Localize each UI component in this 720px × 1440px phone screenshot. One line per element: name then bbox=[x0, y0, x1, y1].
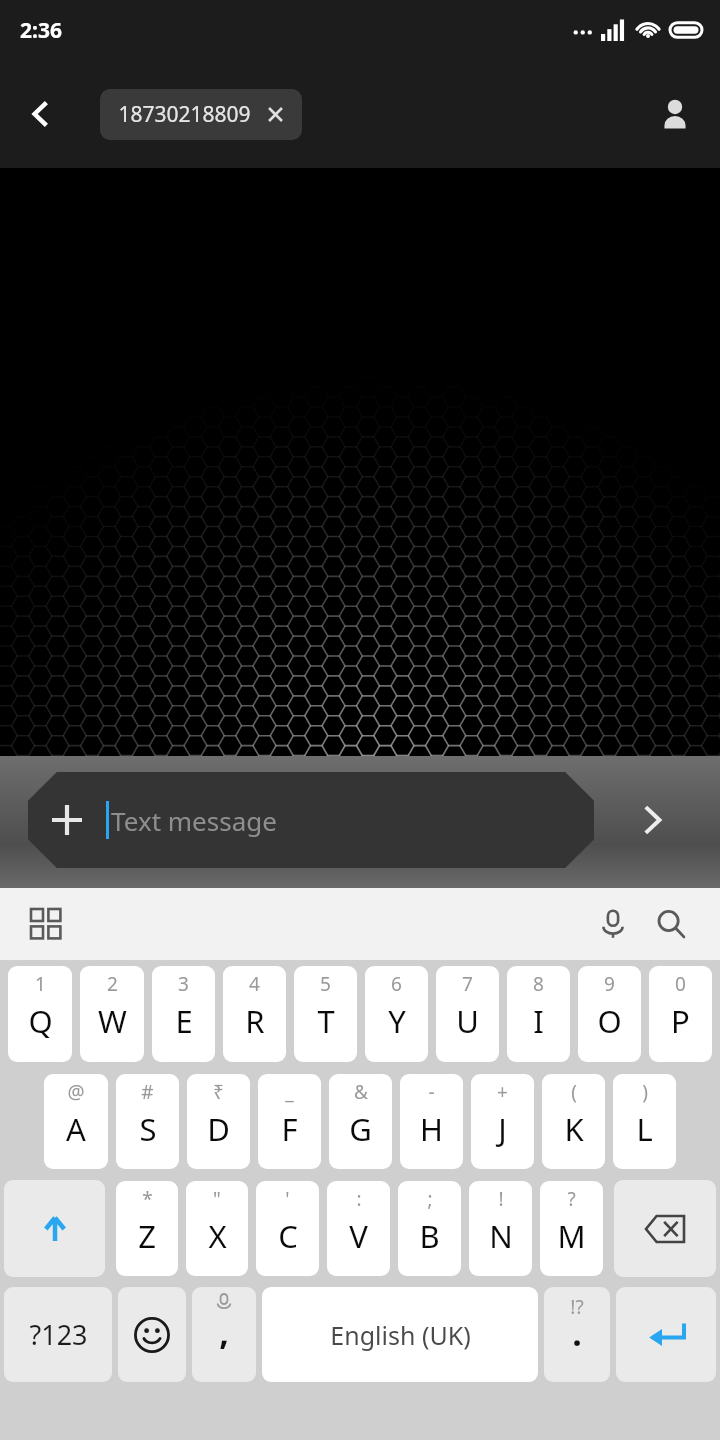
button[interactable]: 9 bbox=[578, 966, 641, 1062]
button[interactable]: Back bbox=[8, 82, 72, 146]
button[interactable]: : bbox=[327, 1181, 390, 1276]
staticText: 0 bbox=[675, 971, 686, 997]
staticText: . bbox=[572, 1310, 582, 1356]
button[interactable]: 4 bbox=[223, 966, 286, 1062]
staticText: X bbox=[208, 1215, 227, 1257]
button[interactable]: + bbox=[471, 1074, 534, 1169]
button[interactable]: # bbox=[116, 1074, 179, 1169]
button[interactable]: Enter bbox=[616, 1287, 716, 1382]
button[interactable]: 18730218809 bbox=[100, 89, 302, 140]
button[interactable]: Contact bbox=[644, 83, 706, 145]
staticText: R bbox=[245, 1000, 265, 1042]
button[interactable]: 0 bbox=[649, 966, 712, 1062]
staticText: B bbox=[419, 1215, 440, 1257]
staticText: 3 bbox=[178, 971, 189, 997]
button[interactable]: 7 bbox=[436, 966, 499, 1062]
button[interactable]: , bbox=[192, 1287, 256, 1382]
staticText: 1 bbox=[35, 971, 46, 997]
button[interactable]: !? bbox=[544, 1287, 610, 1382]
staticText: T bbox=[317, 1000, 335, 1042]
staticText: D bbox=[207, 1108, 230, 1150]
staticText: * bbox=[142, 1186, 153, 1212]
staticText: G bbox=[349, 1108, 372, 1150]
staticText: ₹ bbox=[213, 1079, 224, 1105]
button[interactable]: " bbox=[186, 1181, 248, 1276]
button[interactable]: 8 bbox=[507, 966, 570, 1062]
staticText: 4 bbox=[249, 971, 260, 997]
staticText: 9 bbox=[604, 971, 615, 997]
button[interactable]: 1 bbox=[8, 966, 72, 1062]
staticText: 8 bbox=[533, 971, 544, 997]
staticText: " bbox=[213, 1186, 221, 1212]
staticText: 18730218809 bbox=[118, 100, 251, 129]
staticText: 5 bbox=[320, 971, 331, 997]
button[interactable]: _ bbox=[258, 1074, 321, 1169]
button[interactable]: ' bbox=[256, 1181, 319, 1276]
staticText: , bbox=[219, 1309, 229, 1355]
button[interactable]: Keyboard options bbox=[18, 896, 74, 952]
staticText: I bbox=[533, 1000, 544, 1042]
staticText: N bbox=[489, 1215, 513, 1257]
staticText: : bbox=[356, 1186, 362, 1212]
button[interactable]: ? bbox=[540, 1181, 603, 1276]
button[interactable]: ?123 bbox=[4, 1287, 112, 1382]
staticText: Z bbox=[138, 1215, 156, 1257]
staticText: ( bbox=[571, 1079, 577, 1105]
button[interactable]: 5 bbox=[294, 966, 357, 1062]
staticText: J bbox=[498, 1108, 507, 1150]
staticText: ) bbox=[642, 1079, 648, 1105]
button[interactable]: 2 bbox=[80, 966, 144, 1062]
staticText: + bbox=[497, 1079, 508, 1105]
staticText: O bbox=[597, 1000, 622, 1042]
button[interactable]: ! bbox=[469, 1181, 532, 1276]
staticText: F bbox=[281, 1108, 298, 1150]
button[interactable]: ( bbox=[542, 1074, 605, 1169]
staticText: U bbox=[456, 1000, 479, 1042]
staticText: L bbox=[636, 1108, 653, 1150]
staticText: P bbox=[671, 1000, 690, 1042]
staticText: V bbox=[349, 1215, 368, 1257]
staticText: @ bbox=[67, 1079, 85, 1105]
button[interactable]: * bbox=[116, 1181, 178, 1276]
staticText: E bbox=[175, 1000, 193, 1042]
button[interactable]: ₹ bbox=[187, 1074, 250, 1169]
button[interactable]: Emoji bbox=[118, 1287, 186, 1382]
button[interactable]: Search bbox=[642, 895, 700, 953]
staticText: & bbox=[354, 1079, 368, 1105]
button[interactable]: 3 bbox=[152, 966, 215, 1062]
button[interactable]: 6 bbox=[365, 966, 428, 1062]
button[interactable]: Text message bbox=[28, 772, 594, 868]
button[interactable]: - bbox=[400, 1074, 463, 1169]
staticText: C bbox=[278, 1215, 298, 1257]
staticText: Q bbox=[28, 1000, 53, 1042]
staticText: H bbox=[420, 1108, 443, 1150]
staticText: English (UK) bbox=[330, 1318, 471, 1352]
staticText: - bbox=[428, 1079, 435, 1105]
staticText: 2 bbox=[107, 971, 118, 997]
staticText: Y bbox=[388, 1000, 406, 1042]
button[interactable]: ; bbox=[398, 1181, 461, 1276]
staticText: ? bbox=[567, 1186, 576, 1212]
staticText: ! bbox=[498, 1186, 504, 1212]
staticText: # bbox=[141, 1079, 154, 1105]
staticText: K bbox=[564, 1108, 584, 1150]
staticText: S bbox=[139, 1108, 157, 1150]
staticText: ; bbox=[427, 1186, 433, 1212]
button[interactable]: English (UK) bbox=[262, 1287, 538, 1382]
staticText: 7 bbox=[462, 971, 473, 997]
staticText: _ bbox=[285, 1079, 294, 1105]
staticText: !? bbox=[570, 1294, 584, 1320]
button[interactable]: Voice input bbox=[584, 895, 642, 953]
button[interactable]: @ bbox=[44, 1074, 108, 1169]
button[interactable]: ) bbox=[613, 1074, 676, 1169]
staticText: ?123 bbox=[29, 1316, 88, 1353]
staticText: 6 bbox=[391, 971, 402, 997]
staticText: ' bbox=[285, 1186, 290, 1212]
staticText: A bbox=[66, 1108, 86, 1150]
staticText: M bbox=[557, 1215, 586, 1257]
staticText: W bbox=[98, 1000, 127, 1042]
button[interactable]: & bbox=[329, 1074, 392, 1169]
button[interactable]: Send bbox=[594, 772, 712, 868]
button[interactable]: Backspace bbox=[614, 1180, 716, 1277]
button[interactable]: Shift bbox=[4, 1180, 105, 1277]
